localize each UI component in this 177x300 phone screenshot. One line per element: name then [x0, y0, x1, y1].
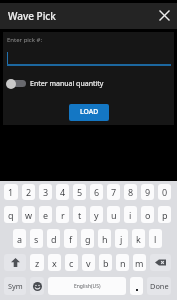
staticText: t: [78, 209, 82, 221]
staticText: 4: [60, 186, 66, 198]
staticText: 6: [94, 186, 100, 198]
button[interactable]: Close: [152, 3, 176, 27]
button[interactable]: x: [48, 254, 61, 271]
staticText: r: [61, 209, 65, 221]
button[interactable]: d: [47, 229, 60, 248]
staticText: Done: [150, 281, 169, 291]
button[interactable]: c: [65, 254, 78, 271]
button[interactable]: 2: [22, 184, 35, 200]
staticText: 5: [77, 186, 83, 198]
button[interactable]: Done: [147, 277, 171, 295]
button[interactable]: n: [116, 254, 129, 271]
button[interactable]: b: [99, 254, 112, 271]
staticText: m: [135, 257, 144, 269]
button[interactable]: r: [56, 206, 69, 223]
button[interactable]: s: [30, 229, 43, 248]
staticText: j: [120, 233, 123, 245]
button[interactable]: i: [124, 206, 137, 223]
button[interactable]: m: [133, 254, 146, 271]
staticText: 7: [111, 186, 117, 198]
button[interactable]: Enter manual quantity: [5, 73, 104, 94]
button[interactable]: Backspace: [150, 254, 171, 271]
staticText: z: [35, 257, 40, 269]
button[interactable]: g: [81, 229, 94, 248]
button[interactable]: p: [158, 206, 171, 223]
button[interactable]: j: [115, 229, 128, 248]
staticText: c: [69, 257, 74, 269]
staticText: o: [145, 209, 151, 221]
button[interactable]: v: [82, 254, 95, 271]
staticText: LOAD: [80, 107, 99, 116]
staticText: i: [129, 209, 132, 221]
button[interactable]: y: [90, 206, 103, 223]
staticText: u: [111, 209, 117, 221]
button[interactable]: Period: [130, 277, 143, 295]
button[interactable]: 6: [90, 184, 103, 200]
staticText: n: [120, 257, 126, 269]
staticText: 0: [162, 186, 168, 198]
button[interactable]: z: [30, 254, 44, 271]
button[interactable]: q: [4, 206, 18, 223]
staticText: x: [52, 257, 57, 269]
button[interactable]: u: [107, 206, 120, 223]
button[interactable]: 9: [141, 184, 154, 200]
staticText: Enter manual quantity: [30, 79, 104, 89]
staticText: b: [103, 257, 109, 269]
button[interactable]: h: [98, 229, 111, 248]
button[interactable]: e: [39, 206, 52, 223]
staticText: 9: [145, 186, 151, 198]
button[interactable]: w: [22, 206, 35, 223]
staticText: s: [34, 233, 39, 245]
staticText: 3: [43, 186, 49, 198]
staticText: g: [85, 233, 91, 245]
staticText: f: [69, 233, 73, 245]
button[interactable]: o: [141, 206, 154, 223]
button[interactable]: t: [73, 206, 86, 223]
staticText: y: [94, 209, 99, 221]
button[interactable]: 0: [158, 184, 171, 200]
staticText: d: [51, 233, 57, 245]
button[interactable]: LOAD: [69, 104, 109, 121]
button[interactable]: f: [64, 229, 77, 248]
button[interactable]: 3: [39, 184, 52, 200]
staticText: h: [102, 233, 108, 245]
staticText: 2: [26, 186, 32, 198]
staticText: Enter pick #:: [7, 36, 42, 44]
staticText: Wave Pick: [8, 9, 56, 23]
staticText: e: [43, 209, 49, 221]
staticText: w: [25, 209, 33, 221]
button[interactable]: k: [132, 229, 145, 248]
button[interactable]: 7: [107, 184, 120, 200]
button[interactable]: 5: [73, 184, 86, 200]
button[interactable]: a: [13, 229, 26, 248]
staticText: Sym: [8, 281, 23, 291]
staticText: q: [8, 209, 14, 221]
staticText: 8: [128, 186, 134, 198]
button[interactable]: 1: [4, 184, 18, 200]
staticText: v: [86, 257, 91, 269]
staticText: 1: [8, 186, 14, 198]
staticText: k: [136, 233, 141, 245]
button[interactable]: 8: [124, 184, 137, 200]
button[interactable]: l: [149, 229, 162, 248]
button[interactable]: English(US): [48, 277, 126, 295]
button[interactable]: Emoji: [30, 277, 44, 295]
button[interactable]: 4: [56, 184, 69, 200]
button[interactable]: Shift: [4, 254, 26, 271]
button[interactable]: Sym: [4, 277, 26, 295]
staticText: English(US): [74, 283, 101, 290]
staticText: l: [154, 233, 157, 245]
staticText: a: [17, 233, 23, 245]
staticText: p: [162, 209, 168, 221]
